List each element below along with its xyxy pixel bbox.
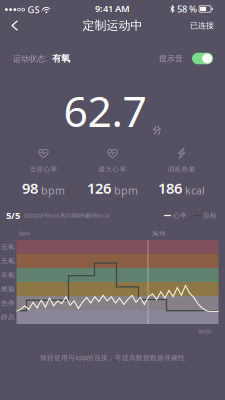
staticText: 36:18 [152,230,165,237]
button[interactable]: 已连接 [181,14,225,37]
staticText: bpm [19,230,30,237]
staticText: 46:00 [198,328,211,335]
staticText: 98 [22,178,38,198]
staticText: 定制运动中 [82,18,142,33]
staticText: 有氧 [1,271,15,279]
staticText: 此次共计45min,累计消耗热量686kcal [24,212,109,219]
staticText: 分 [152,124,161,136]
staticText: 无氧 [1,257,15,265]
staticText: 热身 [1,299,15,307]
staticText: 提示音 [159,54,183,63]
staticText: 最大心率 [98,165,126,173]
staticText: 58 % [177,3,197,15]
staticText: 心率 [173,211,187,220]
staticText: 无氧 [1,243,15,251]
staticText: 有氧 [52,53,70,64]
staticText: bpm [114,183,138,197]
staticText: 保持使用与app的连接，可提高数据数据准确性 [40,353,185,362]
staticText: 126 [87,178,111,198]
staticText: 62.7 [63,82,146,139]
button[interactable]: 提示音开关 [183,52,213,64]
staticText: kcal [185,183,205,197]
staticText: GS [27,3,39,16]
staticText: 静息 [1,313,15,321]
staticText: 目标 [203,211,217,220]
staticText: 已连接 [190,21,214,30]
button[interactable]: 返回 [0,14,26,37]
staticText: 186 [158,178,182,198]
staticText: 5/5 [6,209,20,222]
staticText: 消耗热量 [167,165,195,173]
staticText: bpm [41,183,65,197]
staticText: 燃脂 [1,285,15,293]
staticText: 当前心率 [29,165,57,173]
staticText: 9:41 AM [95,2,130,15]
staticText: 运动状态: [13,53,47,64]
